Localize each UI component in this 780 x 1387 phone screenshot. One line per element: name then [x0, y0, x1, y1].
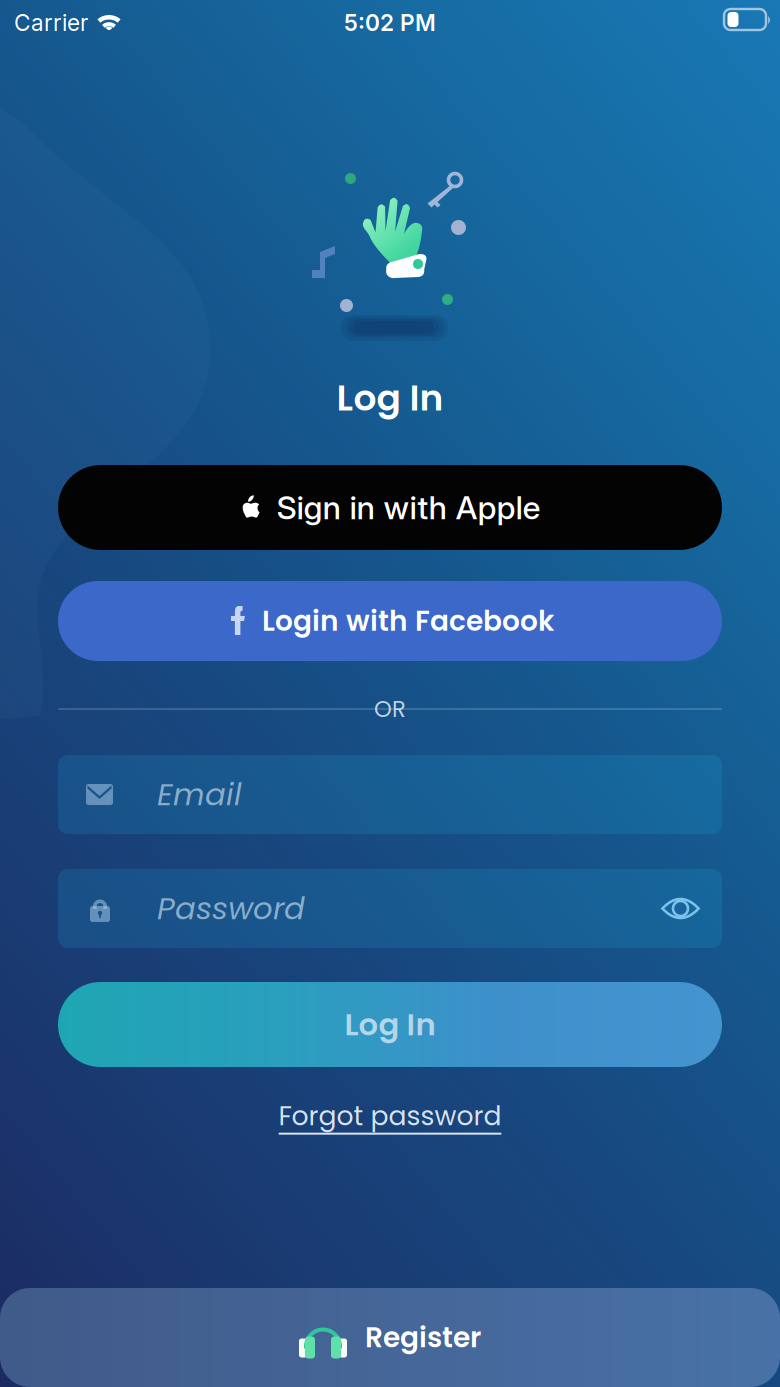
staticText: Email [157, 773, 242, 816]
button[interactable]: Log In [58, 982, 722, 1067]
button[interactable]: Show password [639, 869, 722, 948]
button[interactable]: Forgot password [0, 1092, 780, 1140]
staticText: Log In [336, 373, 443, 423]
staticText: Sign in with Apple [276, 488, 540, 527]
staticText: Log In [344, 1003, 435, 1046]
staticText: 5:02 PM [344, 9, 436, 36]
button[interactable]: Register [0, 1288, 780, 1387]
button[interactable]: Sign in with Apple [58, 465, 722, 550]
staticText: Carrier [14, 9, 88, 36]
staticText: Forgot password [278, 1097, 501, 1135]
staticText: Password [157, 887, 305, 930]
staticText: Login with Facebook [262, 601, 554, 641]
staticText: OR [374, 693, 406, 725]
button[interactable]: Login with Facebook [58, 581, 722, 661]
staticText: Register [365, 1318, 481, 1357]
